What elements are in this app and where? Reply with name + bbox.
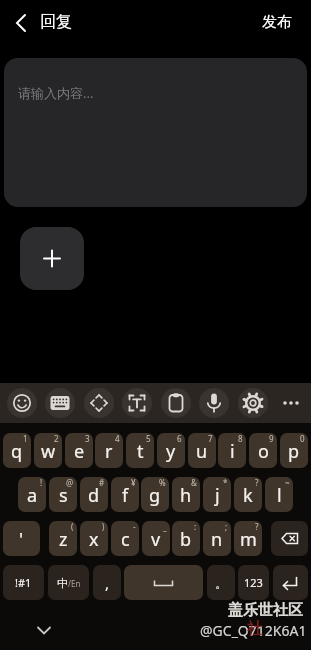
staticText: b: [180, 527, 192, 552]
staticText: !#1: [15, 575, 32, 590]
staticText: t: [137, 439, 144, 464]
staticText: :: [194, 521, 197, 532]
button[interactable]: v: [142, 521, 170, 556]
button[interactable]: u: [188, 433, 216, 468]
button[interactable]: b: [172, 521, 200, 556]
staticText: s: [59, 483, 68, 508]
button[interactable]: g: [141, 477, 169, 512]
staticText: %: [159, 477, 166, 488]
button[interactable]: [124, 565, 203, 600]
staticText: q: [11, 439, 23, 464]
button[interactable]: y: [157, 433, 185, 468]
staticText: #: [99, 477, 105, 488]
staticText: z: [59, 527, 68, 552]
staticText: @GC_Q712K6A1: [200, 621, 307, 640]
staticText: ): [102, 521, 105, 532]
button[interactable]: [20, 227, 84, 290]
staticText: (: [71, 521, 74, 532]
button[interactable]: o: [249, 433, 277, 468]
button[interactable]: [238, 388, 268, 418]
button[interactable]: 中: [48, 565, 89, 600]
button[interactable]: r: [95, 433, 123, 468]
button[interactable]: m: [234, 521, 262, 556]
staticText: 发布: [262, 13, 292, 32]
staticText: _: [163, 521, 167, 532]
staticText: f: [122, 483, 129, 508]
staticText: l: [277, 483, 282, 508]
button[interactable]: t: [126, 433, 154, 468]
staticText: y: [166, 439, 176, 464]
button[interactable]: [84, 388, 114, 418]
staticText: ¥: [131, 477, 136, 488]
button[interactable]: [199, 388, 229, 418]
staticText: ?: [255, 521, 259, 532]
button[interactable]: [7, 388, 37, 418]
staticText: 6: [177, 433, 182, 444]
button[interactable]: ': [3, 521, 40, 556]
button[interactable]: j: [203, 477, 231, 512]
button[interactable]: 请输入内容...: [4, 58, 307, 207]
staticText: &: [191, 477, 197, 488]
button[interactable]: l: [265, 477, 293, 512]
button[interactable]: z: [49, 521, 77, 556]
button[interactable]: c: [111, 521, 139, 556]
button[interactable]: [28, 618, 60, 644]
staticText: 请输入内容...: [18, 84, 94, 102]
staticText: c: [121, 527, 130, 552]
staticText: u: [196, 439, 208, 464]
button[interactable]: d: [80, 477, 108, 512]
staticText: d: [88, 483, 100, 508]
staticText: ~: [285, 477, 290, 488]
button[interactable]: [276, 388, 306, 418]
staticText: 2: [54, 433, 59, 444]
staticText: /En: [68, 578, 81, 589]
staticText: p: [288, 439, 300, 464]
staticText: 盖乐世社区: [228, 601, 303, 620]
button[interactable]: s: [49, 477, 77, 512]
staticText: h: [180, 483, 192, 508]
button[interactable]: a: [18, 477, 46, 512]
staticText: @: [66, 477, 74, 488]
staticText: ,: [105, 573, 110, 593]
button[interactable]: [122, 388, 152, 418]
staticText: 3: [85, 433, 90, 444]
staticText: k: [243, 483, 253, 508]
button[interactable]: p: [280, 433, 308, 468]
staticText: 。: [215, 575, 228, 591]
staticText: ;: [225, 521, 228, 532]
button[interactable]: i: [218, 433, 246, 468]
staticText: ?: [255, 477, 259, 488]
staticText: 中: [57, 576, 68, 590]
staticText: a: [27, 483, 38, 508]
button[interactable]: [273, 565, 308, 600]
button[interactable]: 123: [238, 565, 269, 600]
button[interactable]: [161, 388, 191, 418]
button[interactable]: f: [111, 477, 139, 512]
button[interactable]: x: [80, 521, 108, 556]
button[interactable]: k: [234, 477, 262, 512]
staticText: 9: [269, 433, 274, 444]
staticText: *: [223, 477, 228, 488]
button[interactable]: w: [34, 433, 62, 468]
staticText: 社: [247, 619, 263, 639]
button[interactable]: [271, 521, 308, 556]
staticText: !: [40, 477, 43, 488]
button[interactable]: [45, 388, 75, 418]
staticText: 8: [238, 433, 243, 444]
button[interactable]: q: [3, 433, 31, 468]
staticText: 回复: [40, 12, 72, 32]
button[interactable]: h: [172, 477, 200, 512]
staticText: n: [211, 527, 223, 552]
staticText: ': [19, 527, 24, 552]
button[interactable]: n: [203, 521, 231, 556]
staticText: -: [133, 521, 136, 532]
button[interactable]: 。: [207, 565, 235, 600]
staticText: i: [230, 439, 235, 464]
button[interactable]: e: [65, 433, 93, 468]
staticText: e: [74, 439, 85, 464]
button[interactable]: [6, 8, 38, 38]
staticText: 123: [244, 575, 263, 590]
button[interactable]: ,: [93, 565, 121, 600]
button[interactable]: !#1: [3, 565, 44, 600]
button[interactable]: 发布: [255, 6, 299, 38]
